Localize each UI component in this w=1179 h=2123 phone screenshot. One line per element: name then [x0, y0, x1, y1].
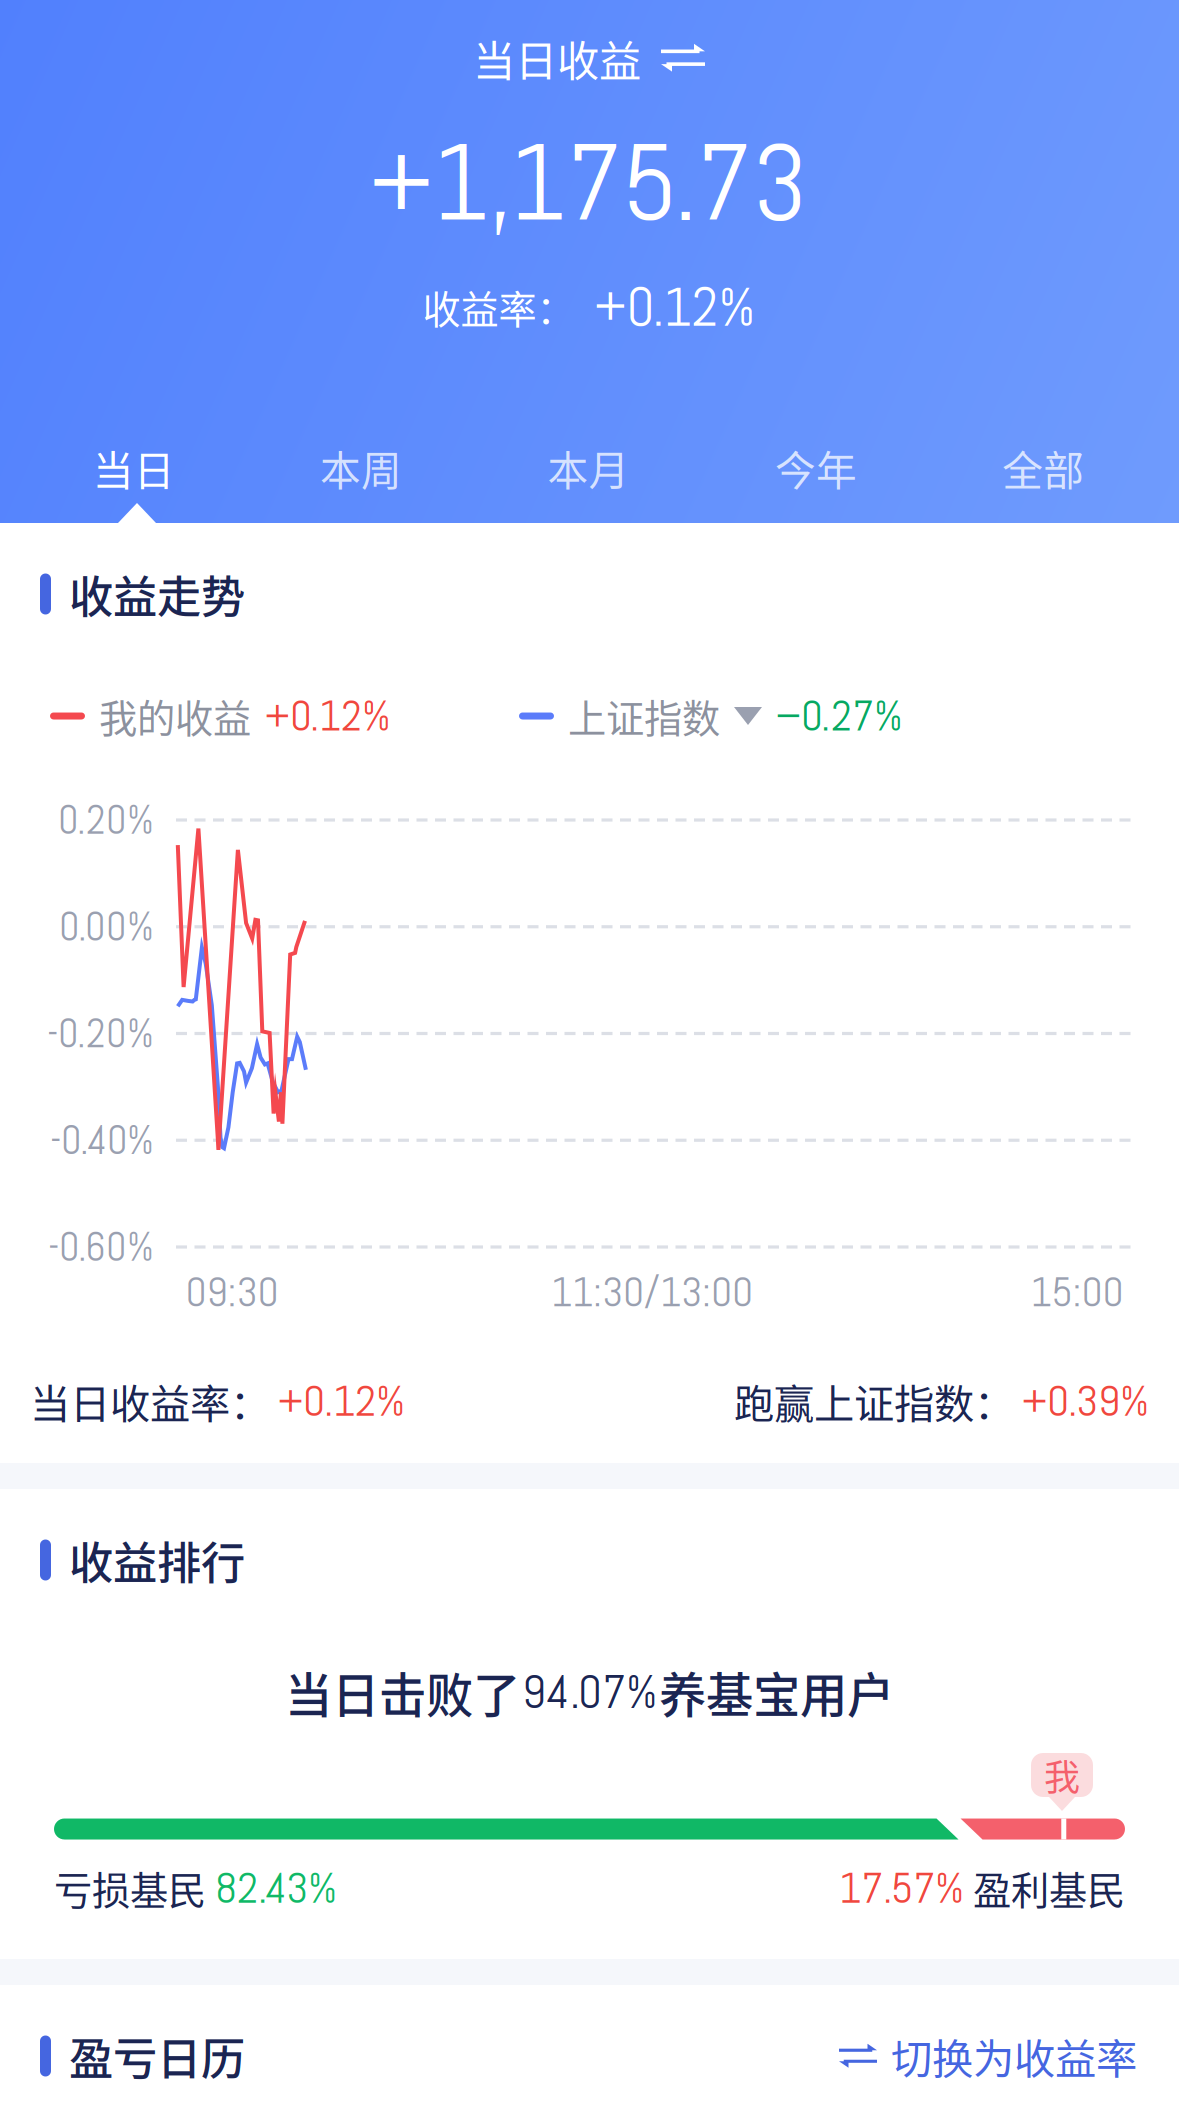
staticText: 94.07%: [522, 1662, 657, 1722]
button[interactable]: 全部: [930, 430, 1157, 506]
staticText: 当日击败了: [285, 1658, 520, 1726]
staticText: -0.40%: [50, 1115, 154, 1166]
staticText: 我的收益: [99, 688, 251, 744]
staticText: 盈亏日历: [69, 2024, 245, 2088]
staticText: 我: [1044, 1749, 1080, 1801]
staticText: 收益走势: [69, 562, 245, 626]
staticText: 0.20%: [58, 794, 154, 845]
staticText: 今年: [775, 439, 857, 497]
button[interactable]: 本周: [247, 430, 475, 506]
staticText: 盈利基民: [964, 1860, 1125, 1916]
staticText: +0.12%: [278, 1373, 405, 1429]
staticText: 切换为收益率: [891, 2026, 1137, 2086]
staticText: 15:00: [1030, 1266, 1123, 1318]
button[interactable]: 当日: [20, 430, 247, 506]
staticText: 当日收益: [473, 27, 641, 89]
button[interactable]: 当日收益: [439, 20, 739, 96]
button[interactable]: 切换为收益率: [839, 2021, 1137, 2091]
button[interactable]: 本月: [475, 430, 702, 506]
staticText: 82.43%: [215, 1860, 337, 1916]
staticText: 亏损基民: [54, 1860, 215, 1916]
staticText: −0.27%: [776, 689, 903, 743]
staticText: 全部: [1002, 439, 1084, 497]
staticText: 上证指数: [568, 688, 720, 744]
staticText: -0.20%: [47, 1008, 154, 1059]
staticText: 当日收益率：: [30, 1372, 270, 1430]
staticText: 11:30/13:00: [551, 1266, 753, 1318]
staticText: -0.60%: [48, 1221, 154, 1272]
staticText: 17.57%: [839, 1860, 964, 1916]
staticText: 当日: [93, 439, 175, 497]
staticText: +1,175.73: [370, 114, 808, 252]
staticText: 09:30: [185, 1266, 278, 1318]
staticText: 养基宝用户: [659, 1658, 894, 1726]
staticText: +0.12%: [594, 272, 755, 342]
staticText: 跑赢上证指数：: [734, 1372, 1014, 1430]
button[interactable]: 今年: [702, 430, 930, 506]
staticText: 0.00%: [59, 901, 154, 952]
staticText: 本周: [320, 439, 402, 497]
staticText: +0.12%: [265, 689, 391, 743]
staticText: +0.39%: [1022, 1373, 1149, 1429]
staticText: 收益排行: [69, 1528, 245, 1592]
staticText: 本月: [547, 439, 629, 497]
staticText: 收益率：: [422, 279, 574, 335]
